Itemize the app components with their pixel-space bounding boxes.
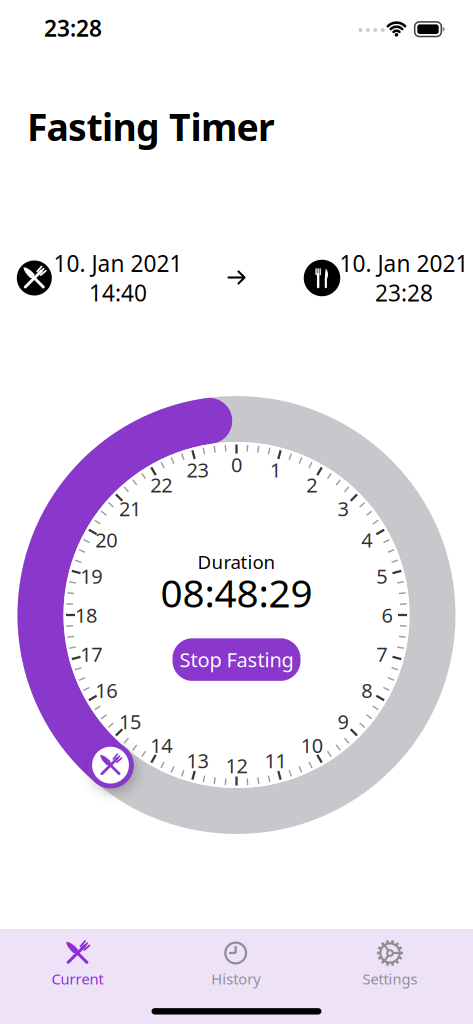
staticText: 18 <box>75 602 97 628</box>
staticText: Duration <box>197 549 275 574</box>
button[interactable]: Stop Fasting <box>172 638 300 681</box>
staticText: Stop Fasting <box>179 646 293 673</box>
staticText: 10. Jan 2021 <box>339 248 468 278</box>
staticText: Fasting Timer <box>27 102 275 151</box>
staticText: 2 <box>306 471 317 498</box>
staticText: 11 <box>264 747 286 774</box>
staticText: 17 <box>80 641 102 667</box>
staticText: 12 <box>225 752 247 779</box>
staticText: 15 <box>119 708 141 735</box>
staticText: Current <box>51 969 103 988</box>
button[interactable]: Current <box>0 929 156 1024</box>
staticText: 6 <box>381 602 392 628</box>
staticText: 10. Jan 2021 <box>53 248 182 278</box>
staticText: 4 <box>361 526 372 553</box>
staticText: History <box>211 969 260 988</box>
staticText: 23:28 <box>44 13 102 43</box>
staticText: 0 <box>231 451 242 478</box>
staticText: 1 <box>270 456 281 483</box>
staticText: 13 <box>186 747 208 774</box>
staticText: 7 <box>376 641 387 667</box>
staticText: 8 <box>361 677 372 704</box>
staticText: 23:28 <box>375 278 433 308</box>
staticText: 08:48:29 <box>160 567 312 618</box>
staticText: 9 <box>337 708 348 735</box>
staticText: 14 <box>150 732 172 759</box>
staticText: 10 <box>301 732 323 759</box>
button[interactable]: History <box>157 929 314 1024</box>
staticText: 14:40 <box>89 278 147 308</box>
staticText: 21 <box>119 495 141 522</box>
staticText: 20 <box>95 526 117 553</box>
staticText: Settings <box>362 969 417 988</box>
staticText: 5 <box>376 563 387 589</box>
staticText: 16 <box>95 677 117 704</box>
staticText: 19 <box>80 563 102 589</box>
staticText: 22 <box>150 471 172 498</box>
button[interactable]: Settings <box>311 929 468 1024</box>
staticText: 3 <box>337 495 348 522</box>
staticText: 23 <box>186 456 208 483</box>
